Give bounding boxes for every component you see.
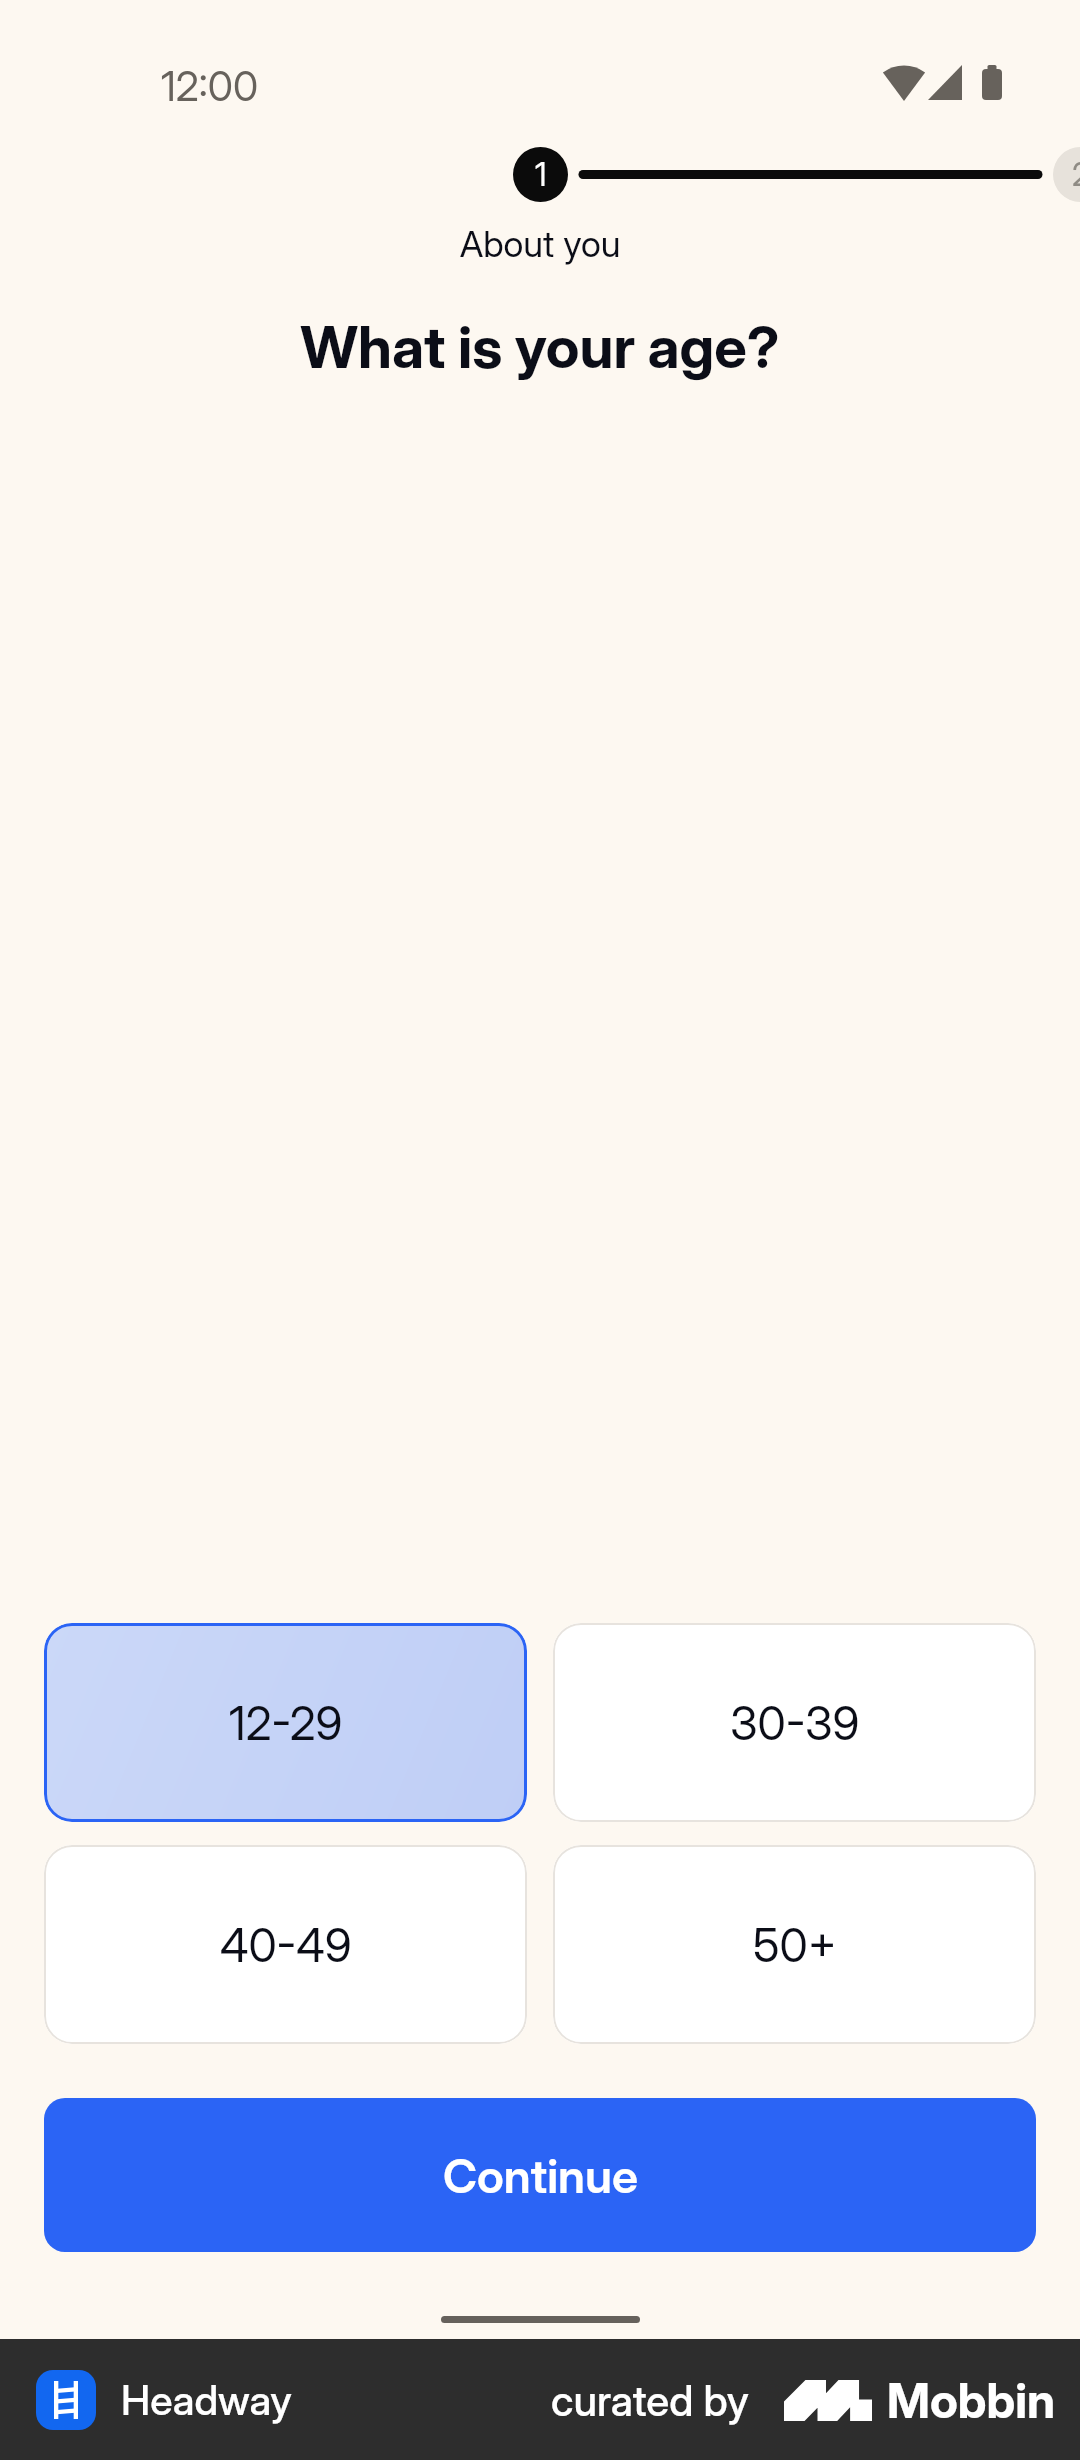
button[interactable]: 30-39 xyxy=(553,1623,1036,1822)
button[interactable]: 50+ xyxy=(553,1845,1036,2044)
other: Signal xyxy=(928,65,962,100)
other: Wi-Fi xyxy=(883,65,925,101)
staticText: Continue xyxy=(443,2147,638,2204)
staticText: Headway xyxy=(121,2375,292,2425)
staticText: 2 xyxy=(1072,155,1080,194)
staticText: 12-29 xyxy=(229,1695,343,1751)
other: Headway xyxy=(36,2370,96,2430)
staticText: 1 xyxy=(535,155,547,194)
staticText: 40-49 xyxy=(220,1917,352,1973)
button[interactable]: Continue xyxy=(44,2098,1036,2252)
button[interactable]: 12-29 xyxy=(44,1623,527,1822)
other: Battery xyxy=(982,65,1002,100)
staticText: 12:00 xyxy=(161,61,259,111)
staticText: 50+ xyxy=(753,1917,837,1973)
staticText: What is your age? xyxy=(0,312,1080,382)
staticText: About you xyxy=(0,222,1080,266)
staticText: 30-39 xyxy=(730,1695,860,1751)
staticText: Mobbin xyxy=(887,2371,1056,2429)
button[interactable]: 40-49 xyxy=(44,1845,527,2044)
staticText: curated by xyxy=(551,2375,749,2426)
